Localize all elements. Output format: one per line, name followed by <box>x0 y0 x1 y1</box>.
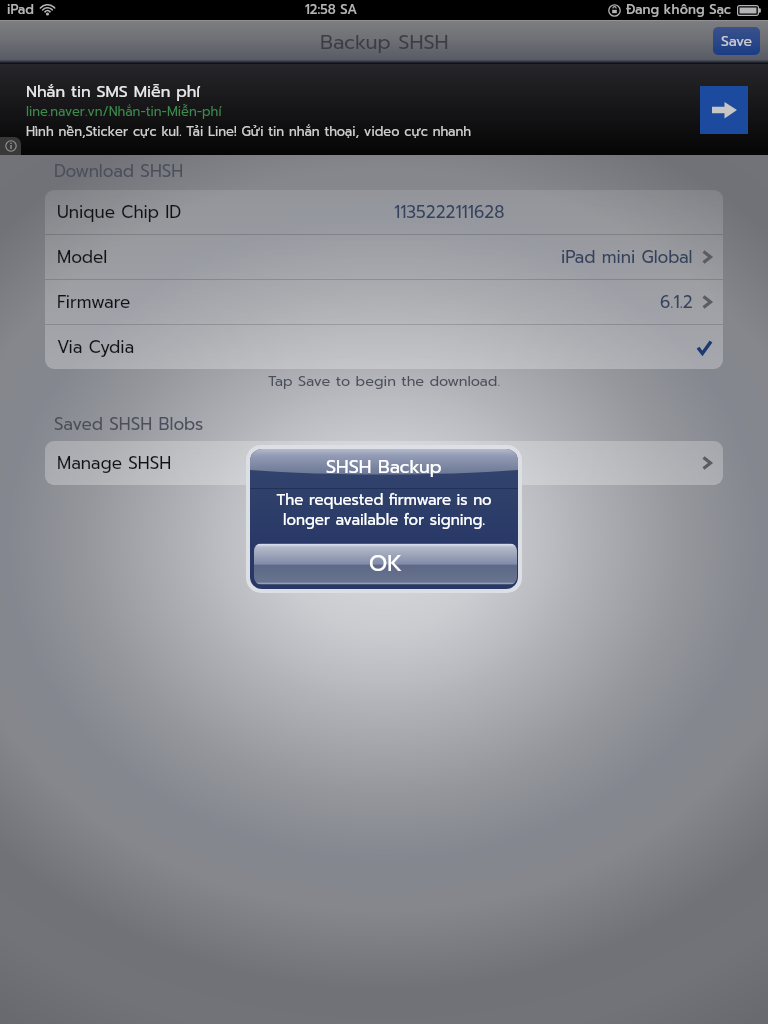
staticText: Backup SHSH <box>320 27 449 57</box>
button[interactable]: Model <box>45 235 723 279</box>
staticText: Unique Chip ID <box>57 199 182 225</box>
button[interactable]: Via Cydia <box>45 325 723 369</box>
staticText: Via Cydia <box>57 334 135 360</box>
staticText: SHSH Backup <box>326 453 442 480</box>
staticText: 1135222111628 <box>394 199 505 225</box>
staticText: 12:58 SA <box>305 0 358 20</box>
staticText: 6.1.2 <box>660 289 693 315</box>
button[interactable]: OK <box>254 543 517 585</box>
staticText: The requested firmware is no longer avai… <box>276 489 492 532</box>
button[interactable]: Firmware <box>45 280 723 324</box>
button[interactable]: Unique Chip ID <box>45 190 723 234</box>
staticText: OK <box>369 547 402 580</box>
staticText: Hình nền,Sticker cực kul. Tải Line! Gửi … <box>26 122 472 142</box>
staticText: iPad mini Global <box>561 244 693 270</box>
staticText: iPad <box>7 0 34 20</box>
button[interactable]: Nhắn tin SMS Miễn phí <box>0 64 768 155</box>
button[interactable]: Open advertisement <box>700 86 748 134</box>
staticText: Download SHSH <box>54 158 184 184</box>
staticText: Firmware <box>57 289 131 315</box>
staticText: Manage SHSH <box>57 450 172 476</box>
staticText: Saved SHSH Blobs <box>54 411 204 437</box>
staticText: Save <box>721 31 753 52</box>
staticText: Model <box>57 244 108 270</box>
staticText: Tap Save to begin the download. <box>268 370 501 392</box>
staticText: Đang không Sạc <box>626 0 731 20</box>
staticText: Nhắn tin SMS Miễn phí <box>26 80 201 104</box>
button[interactable]: Ad information <box>0 137 21 155</box>
button[interactable]: Manage SHSH <box>45 441 723 485</box>
button[interactable]: Save <box>713 27 760 55</box>
staticText: line.naver.vn/Nhắn-tin-Miễn-phí <box>26 102 222 122</box>
